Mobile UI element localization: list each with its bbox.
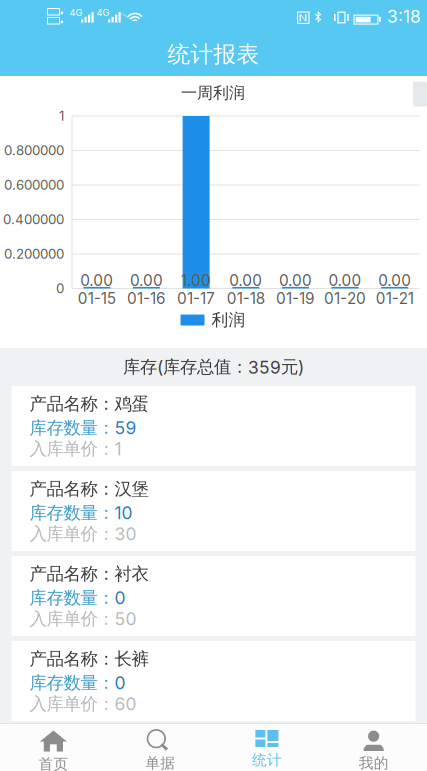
staticText: 0 [114,587,125,608]
staticText: 入库单价： [29,523,114,545]
staticText: 0.200000 [4,246,64,262]
staticText: 01-15 [78,289,116,308]
staticText: 0.600000 [4,177,64,193]
button[interactable]: 产品名称： [11,386,415,466]
staticText: 4G [96,7,109,18]
staticText: 01-17 [177,289,215,308]
staticText: 1.00 [181,271,211,290]
staticText: 01-21 [376,289,414,308]
staticText: 3:18 [387,6,421,27]
staticText: 单据 [145,754,175,771]
staticText: 0.00 [80,271,113,290]
staticText: 01-16 [127,289,166,308]
staticText: 0 [114,672,125,693]
staticText: 入库单价： [29,608,114,630]
button[interactable]: 产品名称： [11,471,415,551]
button[interactable]: 产品名称： [11,641,415,721]
staticText: 0.400000 [3,211,64,227]
staticText: 1 [114,438,121,459]
staticText: 库存数量： [29,417,114,439]
staticText: 汉堡 [114,478,148,500]
button[interactable]: 产品名称： [11,556,415,636]
staticText: 统计报表 [167,40,259,69]
staticText: 0.00 [279,271,312,290]
button[interactable]: 统计 [213,723,320,771]
staticText: 入库单价： [29,693,114,715]
staticText: 我的 [359,754,389,771]
staticText: 库存(库存总值：359元) [123,356,304,378]
staticText: 30 [114,523,136,544]
staticText: 长裤 [114,648,148,670]
staticText: 库存数量： [29,672,114,694]
staticText: 统计 [252,751,282,769]
staticText: 0 [56,280,64,296]
staticText: 01-18 [227,289,265,308]
button[interactable]: 我的 [320,723,427,771]
staticText: 0.00 [229,271,262,290]
staticText: 首页 [38,755,68,771]
staticText: 60 [114,693,136,714]
staticText: 0.00 [328,271,361,290]
staticText: 入库单价： [29,438,114,460]
staticText: 产品名称： [29,563,114,585]
staticText: 01-20 [324,289,366,308]
staticText: 1 [59,108,64,124]
staticText: 0.00 [130,271,163,290]
staticText: 01-19 [276,289,315,308]
staticText: 10 [114,502,132,523]
staticText: 一周利润 [181,83,245,103]
staticText: 0.00 [378,271,411,290]
staticText: 衬衣 [114,563,148,585]
button[interactable]: 首页 [0,723,107,771]
staticText: 59 [114,417,136,438]
button[interactable]: 单据 [107,723,214,771]
staticText: 50 [114,608,136,629]
staticText: 0.800000 [4,142,64,158]
staticText: 库存数量： [29,587,114,609]
staticText: 4G [69,7,82,18]
staticText: 鸡蛋 [114,393,148,415]
staticText: 利润 [211,309,245,330]
staticText: 产品名称： [29,393,114,415]
staticText: 库存数量： [29,502,114,524]
staticText: 产品名称： [29,478,114,500]
staticText: 产品名称： [29,648,114,670]
